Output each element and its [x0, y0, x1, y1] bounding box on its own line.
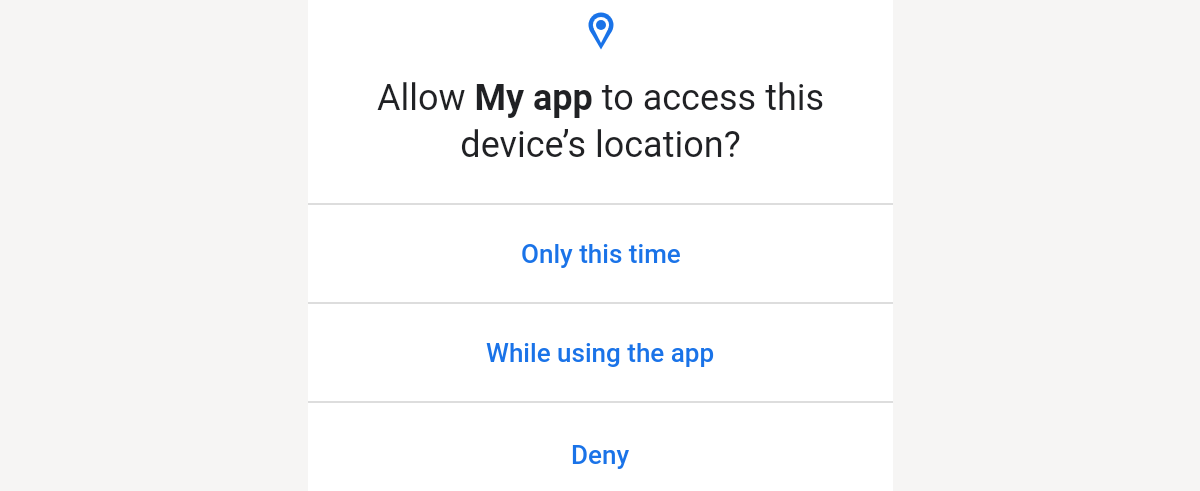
staticText: While using the app: [486, 338, 715, 368]
button[interactable]: Deny: [308, 403, 893, 491]
staticText: Only this time: [521, 239, 681, 269]
button[interactable]: While using the app: [308, 304, 893, 401]
button[interactable]: Only this time: [308, 205, 893, 302]
staticText: Deny: [571, 440, 630, 470]
staticText: Allow My app to access this device’s loc…: [308, 77, 893, 166]
